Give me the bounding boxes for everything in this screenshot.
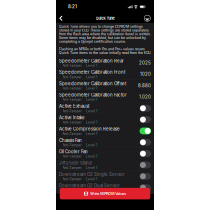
staticText: Anti-Tamper xyxy=(62,98,81,102)
staticText: Anti-Tamper xyxy=(62,121,81,124)
staticText: Anti-Tamper xyxy=(62,64,81,68)
staticText: 2025 xyxy=(139,60,151,66)
staticText: Level 1 xyxy=(86,109,97,113)
staticText: Level 1 xyxy=(86,155,97,158)
staticText: Level 1 xyxy=(86,87,97,90)
button[interactable]: Speedometer Calibration Offset xyxy=(56,80,154,91)
staticText: Write EEPROM Values xyxy=(90,191,126,196)
staticText: Level 1 xyxy=(86,189,97,192)
staticText: Level 1 xyxy=(86,64,97,68)
button[interactable]: Speedometer Calibration Rear xyxy=(56,57,154,68)
staticText: Quick Tune allows you to change EEPROM s… xyxy=(59,25,151,43)
button[interactable]: Active Exhaust xyxy=(56,103,154,114)
staticText: Jiffy Side Stand xyxy=(59,160,92,166)
staticText: Anti-Tamper xyxy=(62,132,81,136)
button[interactable]: Write EEPROM Values xyxy=(60,188,150,199)
staticText: Anti-Tamper xyxy=(62,166,81,170)
button[interactable]: Vehicle xyxy=(138,14,154,23)
staticText: Chassis Fan xyxy=(59,138,82,143)
button[interactable]: Active Compression Release xyxy=(56,125,154,136)
button[interactable]: Back xyxy=(56,14,68,23)
button[interactable]: Downstream O2 Dual Sensor xyxy=(56,182,154,193)
staticText: Downstream O2 Dual Sensor xyxy=(59,183,120,188)
staticText: Level 1 xyxy=(86,98,97,102)
staticText: Anti-Tamper xyxy=(62,177,81,181)
staticText: 8.880 xyxy=(138,83,151,88)
staticText: Speedometer Calibration Front xyxy=(59,70,125,75)
staticText: Anti-Tamper xyxy=(62,143,81,147)
button[interactable]: Jiffy Side Stand xyxy=(56,159,154,170)
staticText: Speedometer Calibration Offset xyxy=(59,81,126,86)
staticText: Anti-Tamper xyxy=(62,87,81,90)
staticText: Oil Cooler Fan xyxy=(59,149,88,154)
staticText: Active Exhaust xyxy=(59,104,89,109)
staticText: Level 1 xyxy=(86,75,97,79)
button[interactable]: Chassis Fan xyxy=(56,137,154,148)
button[interactable]: Downstream O2 Single Sensor xyxy=(56,171,154,182)
staticText: Level 1 xyxy=(86,121,97,124)
staticText: Downstream O2 Single Sensor xyxy=(59,172,125,177)
button[interactable]: Speedometer Calibration Factor xyxy=(56,91,154,102)
staticText: 1.020 xyxy=(139,94,151,100)
staticText: Level 1 xyxy=(86,132,97,136)
staticText: Speedometer Calibration Rear xyxy=(59,58,124,63)
staticText: Level 1 xyxy=(86,177,97,181)
staticText: 1020 xyxy=(140,72,151,77)
staticText: Level 1 xyxy=(86,143,97,147)
staticText: Active Compression Release xyxy=(59,126,120,132)
button[interactable]: Oil Cooler Fan xyxy=(56,148,154,159)
staticText: Flashing an M150x or both Pro and Pro+ v… xyxy=(59,47,151,55)
staticText: Anti-Tamper xyxy=(62,75,81,79)
staticText: 8:21 xyxy=(68,4,77,9)
staticText: Active Intake xyxy=(59,115,85,120)
button[interactable]: Active Intake xyxy=(56,114,154,125)
staticText: Level 1 xyxy=(86,166,97,170)
staticText: Quick Tune xyxy=(95,16,114,21)
staticText: Anti-Tamper xyxy=(62,109,81,113)
staticText: Anti-Tamper xyxy=(62,155,81,158)
button[interactable]: Speedometer Calibration Front xyxy=(56,69,154,80)
staticText: Speedometer Calibration Factor xyxy=(59,92,127,98)
